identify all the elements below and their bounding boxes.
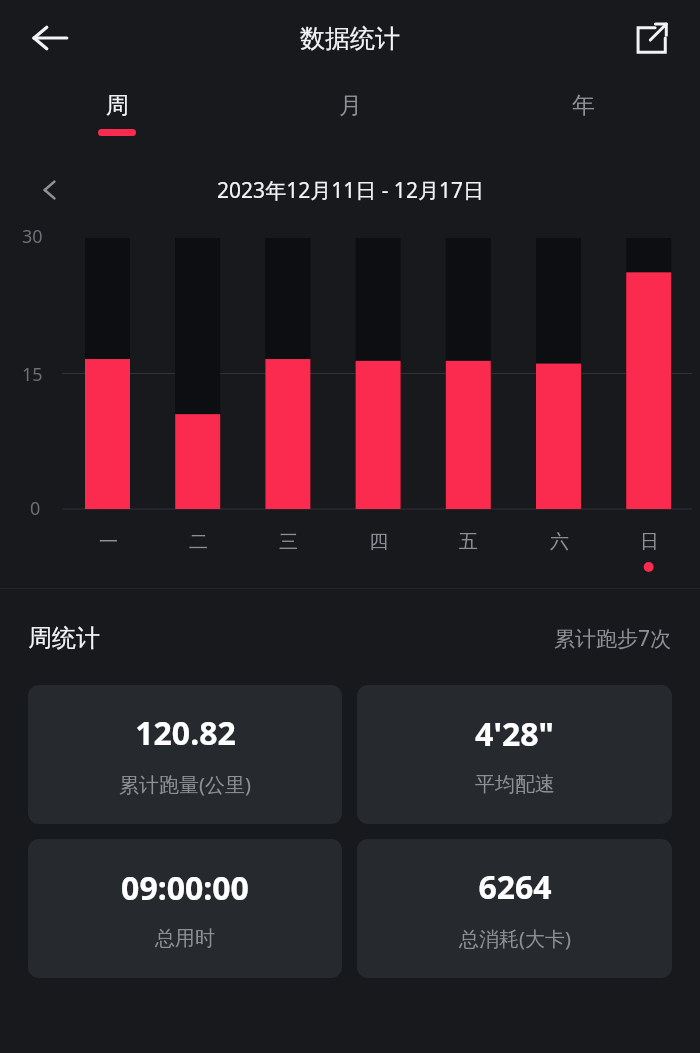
staticText: 累计跑步7次 bbox=[554, 624, 672, 653]
staticText: 数据统计 bbox=[300, 23, 400, 54]
staticText: 一 bbox=[99, 530, 118, 554]
staticText: 六 bbox=[550, 530, 569, 554]
staticText: 平均配速 bbox=[475, 772, 555, 797]
button[interactable]: 二 bbox=[174, 525, 222, 559]
button[interactable]: 120.82 bbox=[28, 685, 342, 824]
button[interactable]: 月 bbox=[234, 84, 467, 156]
button[interactable]: 4'28" bbox=[357, 685, 672, 824]
button[interactable]: Share bbox=[620, 7, 682, 69]
staticText: 周 bbox=[106, 91, 129, 120]
staticText: 0 bbox=[30, 496, 41, 521]
staticText: 120.82 bbox=[135, 711, 236, 755]
staticText: 二 bbox=[189, 530, 208, 554]
button[interactable]: 周 bbox=[0, 84, 234, 156]
staticText: 6264 bbox=[478, 865, 552, 909]
staticText: 周统计 bbox=[28, 623, 100, 653]
staticText: 09:00:00 bbox=[121, 866, 249, 910]
button[interactable]: 日 bbox=[625, 525, 673, 559]
staticText: 日 bbox=[640, 530, 659, 554]
button[interactable]: Back bbox=[16, 4, 84, 72]
staticText: 三 bbox=[279, 530, 298, 554]
staticText: 15 bbox=[22, 362, 43, 387]
button[interactable]: 五 bbox=[444, 525, 492, 559]
staticText: 年 bbox=[572, 91, 595, 120]
button[interactable]: 年 bbox=[467, 84, 700, 156]
staticText: 总用时 bbox=[155, 926, 215, 951]
button[interactable]: 四 bbox=[354, 525, 402, 559]
button[interactable]: 6264 bbox=[357, 839, 672, 978]
staticText: 30 bbox=[22, 224, 43, 249]
staticText: 4'28" bbox=[475, 712, 554, 756]
staticText: 月 bbox=[339, 91, 362, 120]
button[interactable]: Previous week bbox=[26, 166, 74, 214]
staticText: 累计跑量(公里) bbox=[119, 771, 251, 798]
button[interactable]: 09:00:00 bbox=[28, 839, 342, 978]
button[interactable]: 六 bbox=[535, 525, 583, 559]
button[interactable]: 三 bbox=[264, 525, 312, 559]
staticText: 2023年12月11日 - 12月17日 bbox=[217, 176, 484, 205]
staticText: 总消耗(大卡) bbox=[459, 925, 571, 952]
button[interactable]: 一 bbox=[84, 525, 132, 559]
staticText: 四 bbox=[369, 530, 388, 554]
staticText: 五 bbox=[459, 530, 478, 554]
